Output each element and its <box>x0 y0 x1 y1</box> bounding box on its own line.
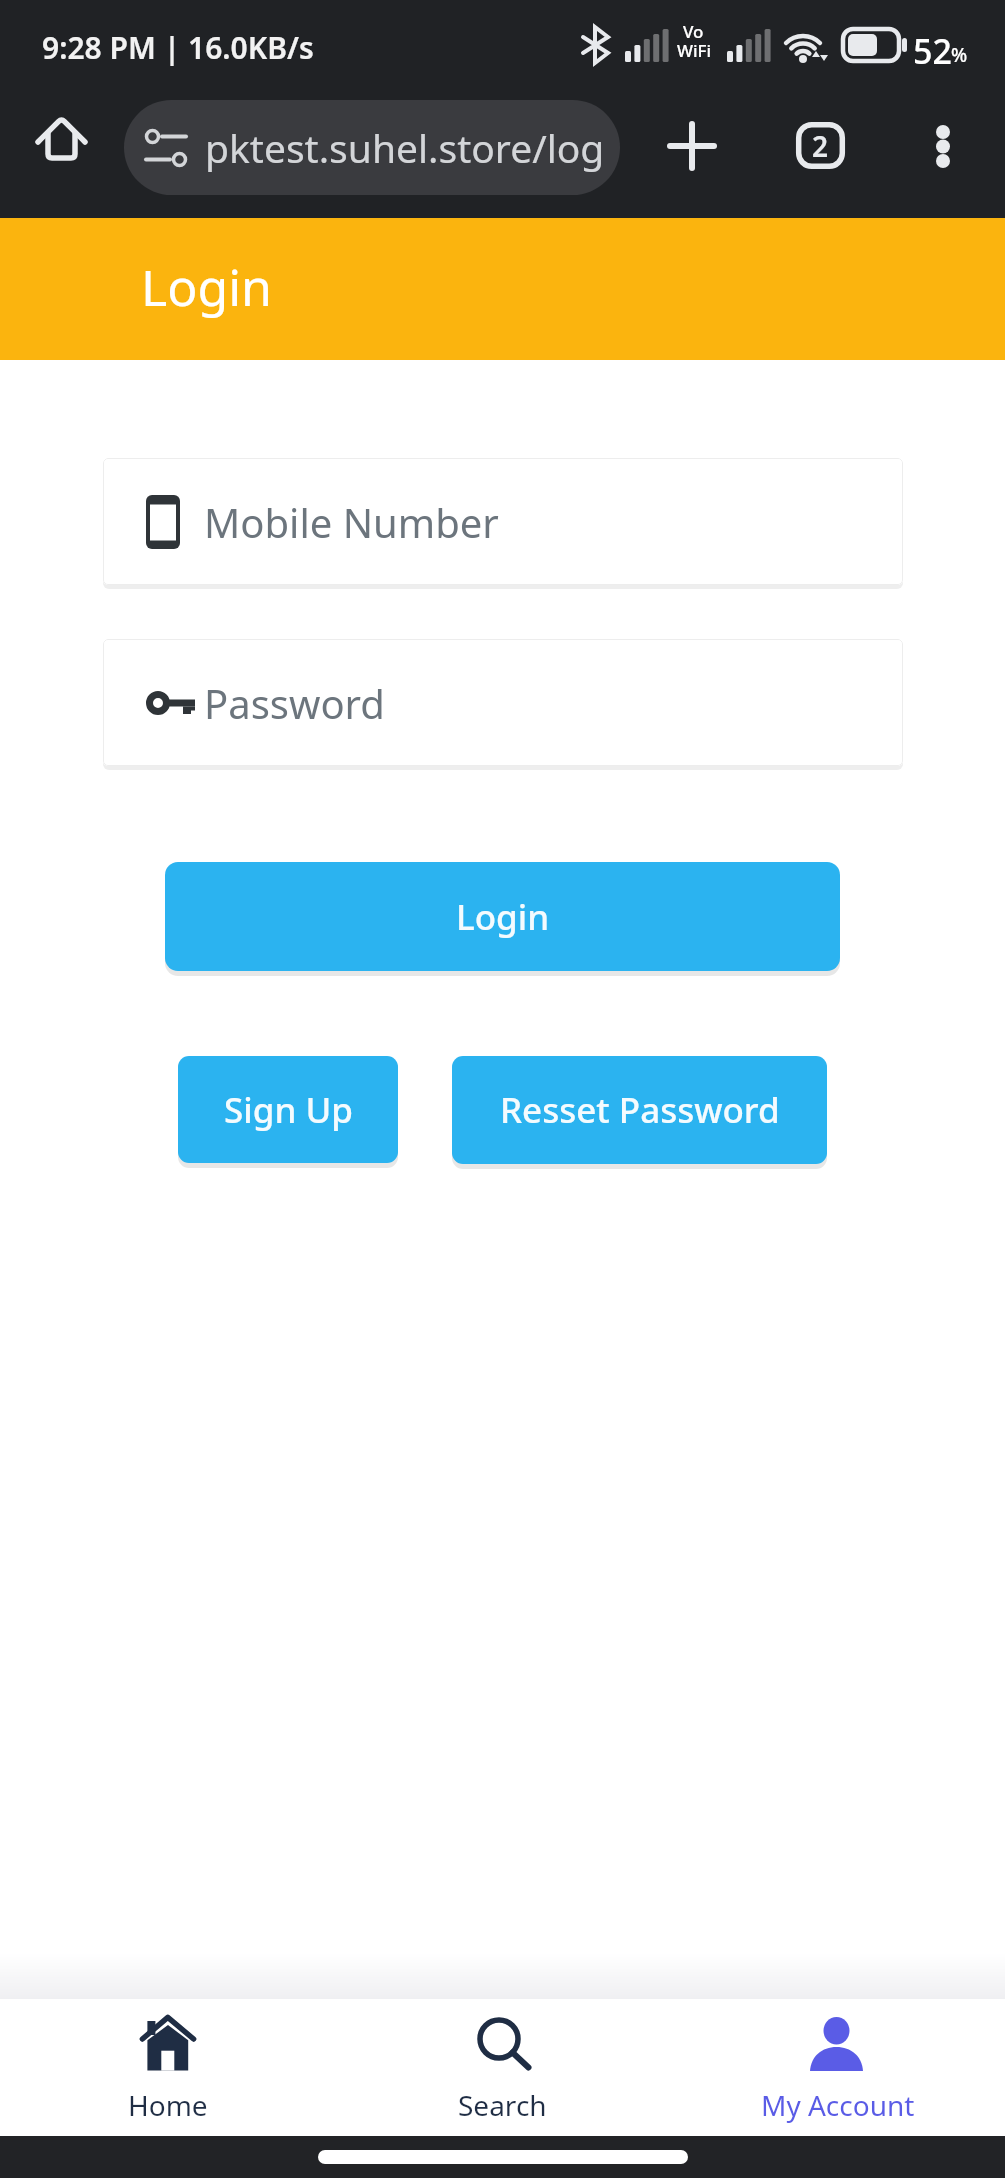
button[interactable]: Sign Up <box>178 1056 398 1163</box>
staticText: Search <box>458 2086 547 2124</box>
button[interactable]: Home <box>0 1999 335 2136</box>
button[interactable]: Mobile Number <box>103 458 903 585</box>
staticText: Resset Password <box>500 1086 780 1134</box>
staticText: % <box>951 42 968 68</box>
button[interactable]: pktest.suhel.store/log <box>124 100 620 195</box>
staticText: pktest.suhel.store/log <box>205 121 605 174</box>
staticText: 9:28 PM | 16.0KB/s <box>42 27 314 68</box>
staticText: WiFi <box>677 39 712 62</box>
button[interactable] <box>34 115 90 171</box>
staticText: Password <box>204 676 385 730</box>
button[interactable]: Login <box>165 862 840 971</box>
staticText: Sign Up <box>224 1086 353 1134</box>
staticText: 2 <box>812 127 829 165</box>
staticText: Login <box>456 893 550 941</box>
staticText: 52 <box>913 28 952 74</box>
button[interactable]: 2 <box>796 122 845 169</box>
staticText: My Account <box>761 2086 915 2124</box>
staticText: Home <box>128 2086 208 2124</box>
button[interactable] <box>664 118 720 174</box>
button[interactable]: My Account <box>670 1999 1005 2136</box>
button[interactable]: Password <box>103 639 903 766</box>
staticText: Mobile Number <box>204 495 499 549</box>
button[interactable]: Search <box>335 1999 670 2136</box>
button[interactable] <box>920 120 966 192</box>
staticText: Vo <box>683 20 704 43</box>
button[interactable]: Resset Password <box>452 1056 827 1164</box>
staticText: Login <box>141 253 272 321</box>
